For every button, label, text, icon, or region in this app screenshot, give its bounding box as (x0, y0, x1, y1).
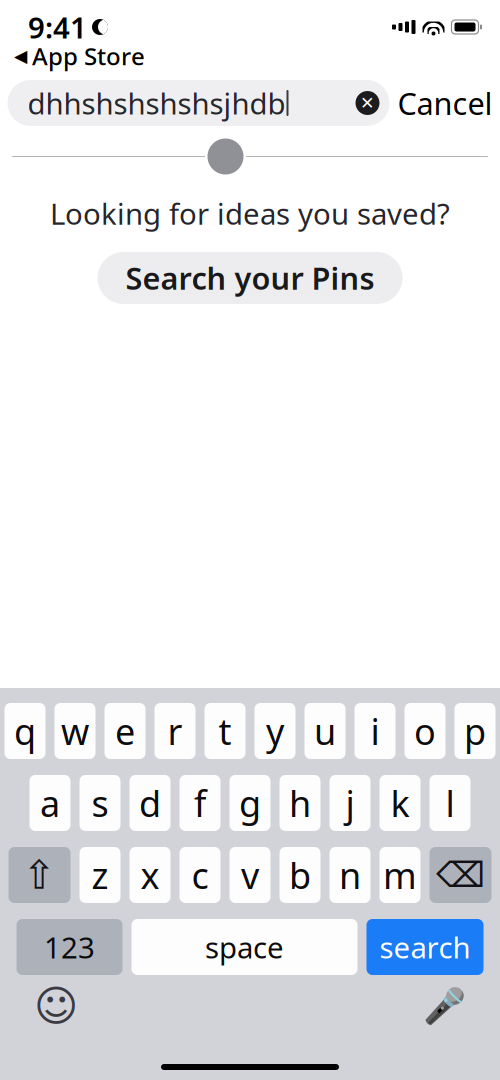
button[interactable]: f (179, 775, 220, 831)
staticText: Cancel (397, 83, 492, 123)
staticText: k (390, 779, 409, 827)
button[interactable]: ◀ (0, 43, 153, 69)
button[interactable]: v (229, 847, 270, 903)
button[interactable]: w (54, 703, 95, 759)
staticText: b (289, 851, 311, 899)
button[interactable]: k (379, 775, 420, 831)
staticText: ◀ (14, 46, 27, 66)
button[interactable]: Emoji keyboard (32, 982, 80, 1030)
staticText: q (14, 707, 36, 755)
staticText: 🎤 (422, 986, 465, 1026)
staticText: i (370, 707, 379, 755)
button[interactable]: Clear text (345, 80, 389, 126)
button[interactable]: m (379, 847, 420, 903)
staticText: space (205, 927, 284, 966)
staticText: u (314, 707, 336, 755)
staticText: 9:41 (28, 7, 87, 46)
button[interactable]: t (204, 703, 245, 759)
button[interactable]: a (29, 775, 70, 831)
staticText: g (239, 779, 261, 827)
button[interactable]: h (279, 775, 320, 831)
staticText: c (191, 851, 208, 899)
staticText: s (91, 779, 108, 827)
button[interactable]: c (179, 847, 220, 903)
button[interactable]: y (254, 703, 295, 759)
button[interactable]: q (4, 703, 45, 759)
button[interactable]: b (279, 847, 320, 903)
button[interactable]: e (104, 703, 145, 759)
button[interactable]: Dictation (420, 982, 468, 1030)
staticText: y (266, 707, 284, 755)
staticText: 123 (44, 927, 95, 966)
staticText: App Store (32, 40, 145, 72)
staticText: r (167, 707, 182, 755)
button[interactable]: Delete (429, 847, 491, 903)
staticText: t (218, 707, 231, 755)
staticText: e (115, 707, 135, 755)
button[interactable]: u (304, 703, 345, 759)
button[interactable]: Search your Pins (97, 252, 402, 304)
staticText: ⌫ (436, 855, 485, 895)
button[interactable]: l (429, 775, 470, 831)
staticText: j (345, 779, 354, 827)
staticText: l (445, 779, 454, 827)
button[interactable]: r (154, 703, 195, 759)
staticText: p (464, 707, 486, 755)
staticText: ☺ (34, 982, 78, 1030)
staticText: Looking for ideas you saved? (50, 194, 450, 233)
staticText: n (339, 851, 361, 899)
button[interactable]: s (79, 775, 120, 831)
button[interactable]: j (329, 775, 370, 831)
button[interactable]: n (329, 847, 370, 903)
button[interactable]: space (131, 919, 357, 975)
staticText: dhhshshshshsjhdb (27, 83, 285, 122)
button[interactable]: Shift (8, 847, 70, 903)
button[interactable]: p (454, 703, 495, 759)
staticText: ✕ (360, 93, 375, 113)
staticText: h (289, 779, 311, 827)
button[interactable]: g (229, 775, 270, 831)
button[interactable]: o (404, 703, 445, 759)
staticText: Search your Pins (125, 258, 374, 298)
staticText: m (383, 851, 417, 899)
button[interactable]: i (354, 703, 395, 759)
staticText: a (40, 779, 60, 827)
button[interactable]: d (129, 775, 170, 831)
staticText: z (91, 851, 108, 899)
button[interactable]: 123 (16, 919, 122, 975)
button[interactable]: Cancel (389, 80, 500, 126)
staticText: v (241, 851, 259, 899)
button[interactable]: search (366, 919, 483, 975)
staticText: w (61, 707, 89, 755)
staticText: x (140, 851, 159, 899)
staticText: f (194, 779, 206, 827)
staticText: ⇧ (22, 852, 56, 898)
staticText: d (139, 779, 161, 827)
staticText: o (414, 707, 436, 755)
button[interactable]: z (79, 847, 120, 903)
staticText: search (379, 927, 470, 966)
button[interactable]: x (129, 847, 170, 903)
